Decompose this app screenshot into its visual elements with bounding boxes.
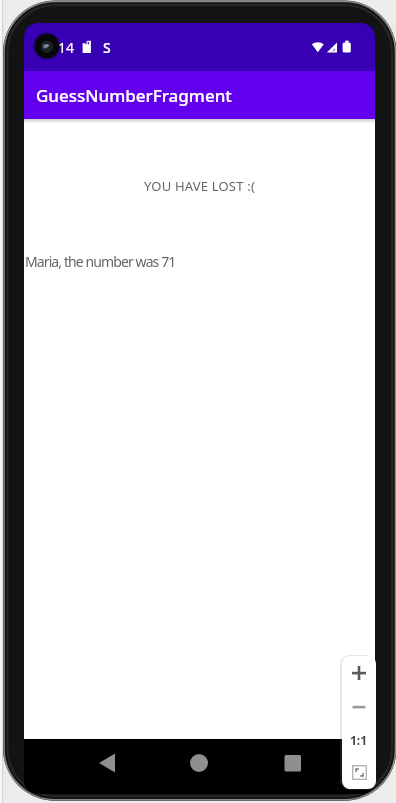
button[interactable]: [175, 739, 223, 787]
button[interactable]: [269, 739, 317, 787]
staticText: 14: [58, 38, 75, 57]
staticText: 1:1: [350, 732, 368, 748]
button[interactable]: [342, 690, 376, 723]
button[interactable]: [83, 739, 131, 787]
button[interactable]: [342, 656, 376, 690]
button[interactable]: GuessNumberFragment: [24, 71, 375, 119]
staticText: GuessNumberFragment: [36, 84, 232, 107]
staticText: YOU HAVE LOST :(: [144, 177, 255, 195]
button[interactable]: [342, 756, 376, 789]
staticText: Maria, the number was 71: [25, 252, 176, 271]
staticText: S: [103, 38, 111, 57]
button[interactable]: 1:1: [342, 723, 376, 756]
